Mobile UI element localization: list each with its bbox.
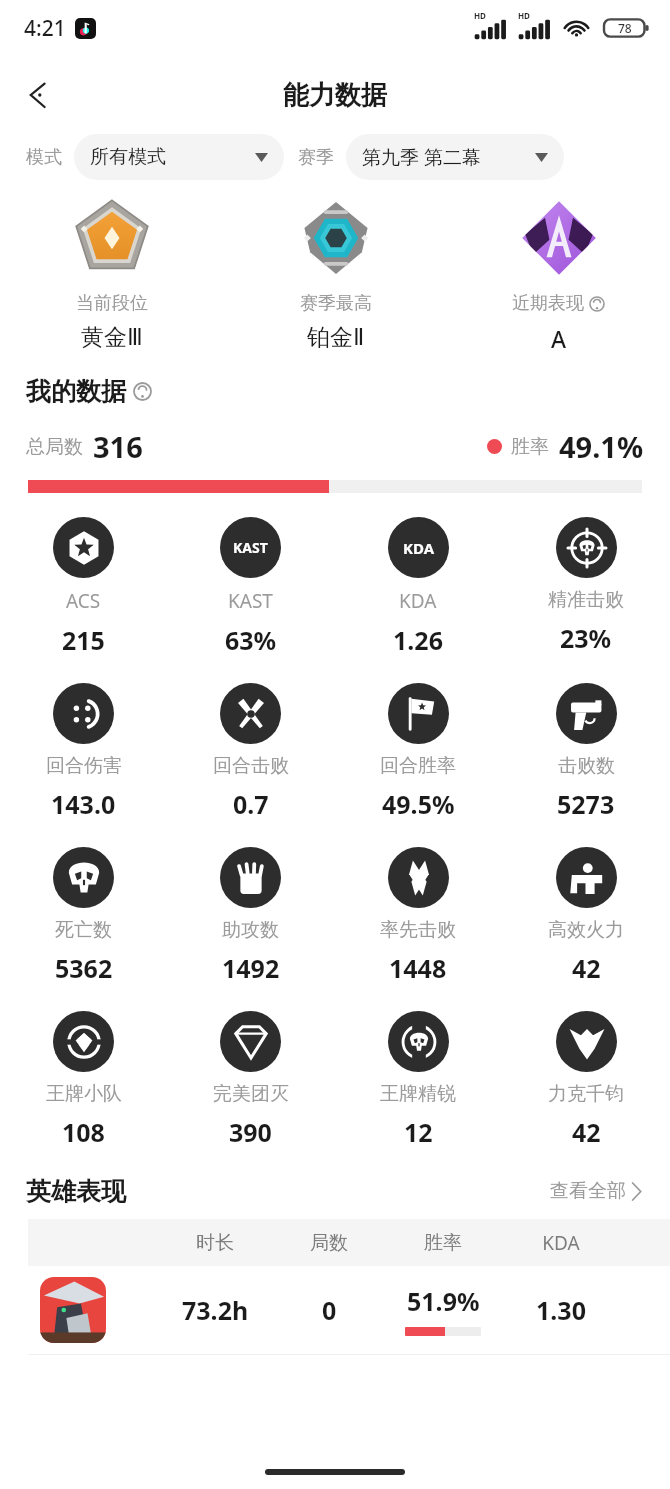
other: 精准击败 (556, 517, 617, 578)
staticText: 助攻数 (222, 918, 279, 942)
button[interactable]: 王牌小队 (0, 1011, 167, 1149)
other: 王牌精锐 (388, 1011, 449, 1072)
other: ACS (53, 517, 114, 578)
button[interactable]: 率先击败 (334, 847, 502, 985)
staticText: 12 (404, 1115, 433, 1149)
button[interactable]: 当前段位 (0, 194, 224, 352)
staticText: 73.2h (182, 1293, 249, 1327)
staticText: A (551, 323, 567, 354)
staticText: 时长 (196, 1231, 234, 1255)
staticText: 4:21 (24, 14, 66, 43)
staticText: KDA (403, 538, 435, 558)
other: 死亡数 (53, 847, 114, 908)
staticText: 精准击败 (548, 588, 624, 612)
other: 击败数 (556, 683, 617, 744)
staticText: 1492 (222, 951, 280, 985)
button[interactable]: 所有模式 (74, 134, 284, 180)
staticText: 近期表现 (512, 292, 584, 315)
staticText: HD (518, 10, 530, 21)
button[interactable]: Back (12, 69, 64, 121)
staticText: 1.30 (536, 1293, 586, 1327)
staticText: 回合胜率 (380, 754, 456, 778)
staticText: KDA (399, 588, 437, 614)
staticText: 能力数据 (283, 79, 387, 112)
staticText: HD (474, 10, 486, 21)
staticText: 赛季最高 (300, 292, 372, 315)
staticText: 回合伤害 (46, 754, 122, 778)
staticText: 316 (93, 427, 143, 466)
staticText: 108 (62, 1115, 105, 1149)
staticText: 胜率 (424, 1231, 462, 1255)
staticText: 王牌精锐 (380, 1082, 456, 1106)
button[interactable]: 击败数 (502, 683, 670, 821)
staticText: 42 (572, 951, 601, 985)
staticText: 力克千钧 (548, 1082, 624, 1106)
staticText: 1448 (389, 951, 447, 985)
button[interactable]: KAST (167, 517, 334, 657)
button[interactable]: 高效火力 (502, 847, 670, 985)
staticText: 完美团灭 (213, 1082, 289, 1106)
staticText: 51.9% (407, 1284, 480, 1318)
button[interactable]: 王牌精锐 (334, 1011, 502, 1149)
other: 回合胜率 (388, 683, 449, 744)
staticText: 我的数据 (26, 376, 126, 407)
button[interactable]: 查看全部 (546, 1175, 646, 1207)
staticText: 49.5% (382, 787, 455, 821)
staticText: 胜率 (511, 435, 549, 459)
staticText: 局数 (310, 1231, 348, 1255)
staticText: 第九季 第二幕 (362, 144, 481, 170)
staticText: 63% (225, 623, 277, 657)
other: 力克千钧 (556, 1011, 617, 1072)
button[interactable]: 第九季 第二幕 (346, 134, 564, 180)
staticText: 赛季 (298, 146, 334, 169)
button[interactable]: 回合胜率 (334, 683, 502, 821)
button[interactable]: 助攻数 (167, 847, 334, 985)
staticText: 23% (560, 621, 612, 655)
staticText: 死亡数 (55, 918, 112, 942)
staticText: 0.7 (233, 787, 269, 821)
staticText: 率先击败 (380, 918, 456, 942)
staticText: 1.26 (393, 623, 443, 657)
other: KDA (388, 517, 449, 578)
button[interactable]: ACS (0, 517, 167, 657)
staticText: 所有模式 (90, 145, 166, 169)
button[interactable]: 回合伤害 (0, 683, 167, 821)
button[interactable]: 精准击败 (502, 517, 670, 655)
staticText: 总局数 (26, 435, 83, 459)
button[interactable]: 死亡数 (0, 847, 167, 985)
button[interactable]: 力克千钧 (502, 1011, 670, 1149)
other: 助攻数 (220, 847, 281, 908)
other: 回合击败 (220, 683, 281, 744)
other: 回合伤害 (53, 683, 114, 744)
staticText: 0 (322, 1293, 337, 1327)
staticText: 击败数 (558, 754, 615, 778)
button[interactable]: 近期表现 (447, 194, 670, 354)
staticText: 王牌小队 (46, 1082, 122, 1106)
other: 率先击败 (388, 847, 449, 908)
button[interactable]: 赛季最高 (224, 194, 447, 352)
button[interactable]: 回合击败 (167, 683, 334, 821)
staticText: 模式 (26, 146, 62, 169)
staticText: 215 (62, 623, 105, 657)
staticText: KAST (228, 588, 273, 614)
other: 高效火力 (556, 847, 617, 908)
staticText: 查看全部 (550, 1179, 626, 1203)
staticText: 78 (618, 20, 632, 36)
staticText: 5362 (55, 951, 113, 985)
button[interactable]: 完美团灭 (167, 1011, 334, 1149)
staticText: 143.0 (51, 787, 116, 821)
staticText: 黄金Ⅲ (81, 323, 143, 352)
other: 完美团灭 (220, 1011, 281, 1072)
button[interactable]: KDA (334, 517, 502, 657)
staticText: 英雄表现 (26, 1176, 126, 1207)
staticText: 高效火力 (548, 918, 624, 942)
staticText: 当前段位 (76, 292, 148, 315)
staticText: 5273 (557, 787, 615, 821)
other: 王牌小队 (53, 1011, 114, 1072)
button[interactable]: 73.2h (28, 1266, 670, 1354)
staticText: 390 (229, 1115, 272, 1149)
staticText: 铂金Ⅱ (307, 323, 365, 352)
staticText: 49.1% (559, 427, 644, 466)
staticText: KDA (542, 1230, 580, 1256)
staticText: 回合击败 (213, 754, 289, 778)
